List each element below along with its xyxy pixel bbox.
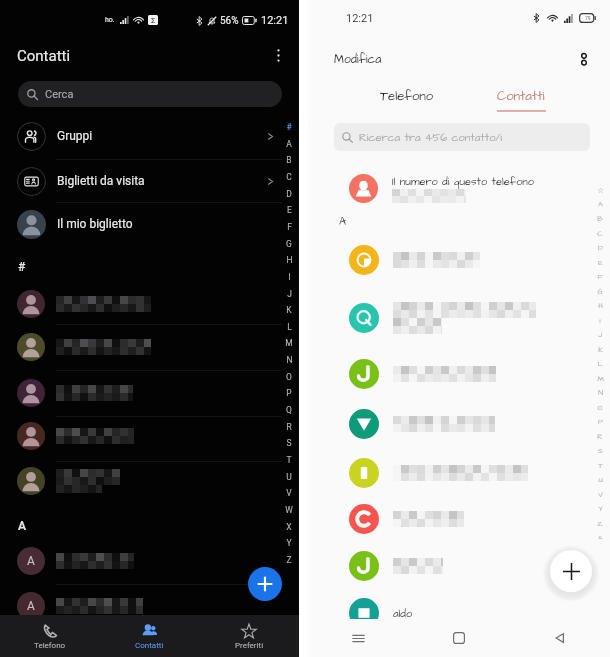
staticText: Cerca — [45, 88, 74, 101]
button[interactable] — [308, 449, 590, 497]
staticText: Z — [597, 519, 603, 529]
button[interactable]: Recents — [308, 619, 408, 657]
staticText: T — [286, 455, 292, 465]
button[interactable]: A — [0, 539, 282, 583]
button[interactable]: Preferiti — [199, 615, 299, 657]
staticText: J — [598, 330, 602, 340]
button[interactable]: More options — [265, 42, 291, 68]
staticText: Contatti — [17, 47, 71, 65]
button[interactable] — [0, 371, 282, 415]
button[interactable] — [308, 236, 590, 284]
staticText: P — [286, 388, 292, 398]
staticText: S — [598, 446, 603, 456]
staticText: R — [286, 422, 292, 432]
staticText: K — [286, 305, 292, 315]
button[interactable]: Cerca — [18, 81, 282, 107]
button[interactable] — [308, 400, 590, 448]
staticText: Telefono — [34, 641, 66, 650]
button[interactable]: More options — [572, 46, 596, 70]
staticText: A — [27, 599, 35, 613]
button[interactable]: Telefono — [0, 615, 99, 657]
staticText: Modifica — [334, 51, 382, 68]
staticText: B — [597, 214, 603, 224]
staticText: Ricerca tra 456 contatto/i — [359, 130, 502, 145]
staticText: Y — [286, 538, 292, 548]
staticText: N — [286, 355, 293, 365]
button[interactable]: Contatti — [486, 83, 556, 109]
staticText: aldo — [393, 606, 413, 621]
staticText: N — [598, 388, 603, 398]
button[interactable]: Contatti — [99, 615, 199, 657]
button[interactable]: Add contact — [550, 550, 592, 592]
staticText: O — [597, 403, 603, 413]
button[interactable]: Ricerca tra 456 contatto/i — [334, 123, 590, 151]
button[interactable]: Home — [408, 619, 509, 657]
staticText: G — [597, 287, 603, 297]
staticText: L — [287, 322, 292, 332]
button[interactable]: Add contact — [248, 567, 282, 601]
staticText: A — [339, 214, 347, 229]
staticText: P — [598, 417, 603, 427]
button[interactable]: aldo — [308, 589, 590, 637]
staticText: S — [286, 438, 292, 448]
staticText: D — [598, 243, 603, 253]
button[interactable] — [308, 350, 590, 398]
button[interactable]: A — [0, 584, 282, 628]
staticText: Y — [598, 504, 603, 514]
staticText: G — [286, 239, 292, 249]
staticText: A — [286, 139, 292, 149]
button[interactable]: Il mio biglietto — [0, 201, 282, 247]
button[interactable] — [0, 459, 282, 503]
staticText: K — [598, 345, 603, 355]
button[interactable] — [308, 294, 590, 342]
staticText: Preferiti — [235, 641, 264, 650]
staticText: T — [598, 461, 603, 471]
staticText: D — [286, 189, 292, 199]
button[interactable] — [308, 542, 590, 590]
staticText: Contatti — [135, 641, 164, 650]
staticText: M — [597, 374, 604, 384]
staticText: # — [286, 122, 292, 132]
staticText: L — [597, 359, 603, 369]
button[interactable] — [0, 282, 282, 326]
staticText: J — [287, 289, 292, 299]
staticText: Il numero di questo telefono — [392, 174, 535, 189]
staticText: ☆ — [597, 186, 604, 195]
button[interactable]: Back — [509, 619, 610, 657]
staticText: V — [286, 488, 292, 498]
staticText: A — [598, 200, 603, 210]
staticText: R — [597, 432, 603, 442]
staticText: X — [286, 522, 292, 532]
staticText: Contatti — [497, 87, 545, 105]
staticText: C — [597, 229, 603, 239]
staticText: A — [18, 519, 26, 533]
staticText: H — [286, 255, 293, 265]
button[interactable] — [0, 414, 282, 458]
button[interactable]: Il numero di questo telefono — [308, 165, 590, 211]
staticText: Telefono — [380, 87, 434, 105]
button[interactable]: Telefono — [372, 83, 442, 109]
staticText: # — [18, 260, 26, 274]
staticText: E — [287, 205, 292, 215]
button[interactable]: Gruppi — [0, 114, 282, 158]
staticText: I — [599, 316, 601, 326]
staticText: 12:21 — [346, 12, 374, 25]
button[interactable] — [308, 495, 590, 543]
staticText: C — [286, 172, 292, 182]
staticText: B — [286, 155, 292, 165]
staticText: O — [286, 372, 292, 382]
staticText: 56% — [220, 15, 239, 27]
staticText: Z — [286, 555, 292, 565]
staticText: 79 — [585, 15, 591, 21]
staticText: M — [285, 338, 293, 348]
staticText: Σ — [151, 16, 156, 25]
staticText: Gruppi — [57, 129, 93, 143]
staticText: 12:21 — [261, 14, 289, 27]
staticText: Q — [286, 405, 292, 415]
staticText: W — [285, 505, 293, 515]
staticText: H — [598, 301, 603, 311]
button[interactable]: Biglietti da visita — [0, 159, 282, 203]
staticText: Biglietti da visita — [57, 174, 145, 188]
button[interactable] — [0, 325, 282, 369]
staticText: Il mio biglietto — [57, 217, 133, 231]
